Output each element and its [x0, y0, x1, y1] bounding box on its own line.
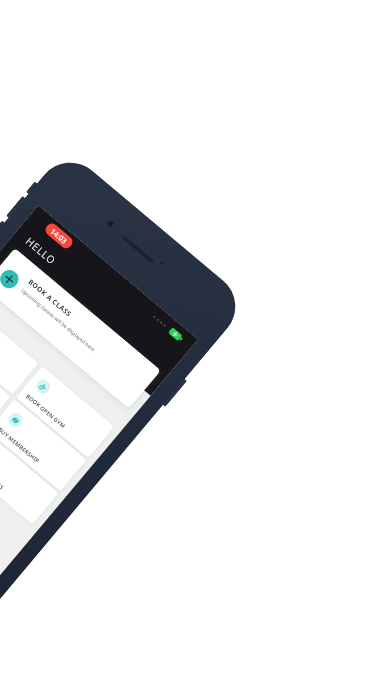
button[interactable]: BUY MEMBERSHIP — [0, 399, 87, 491]
button[interactable]: MY BOOKINGS — [0, 432, 59, 525]
staticText: MY BOOKINGS — [0, 459, 6, 491]
button[interactable]: BOOK OPEN GYM — [16, 366, 115, 458]
button[interactable]: BOOK A CLASS — [0, 248, 161, 409]
staticText: BUY MEMBERSHIP — [0, 425, 41, 465]
button[interactable]: Add booking — [0, 266, 22, 292]
staticText: BOOK OPEN GYM — [24, 392, 67, 430]
button[interactable]: BOOK A CLASS — [0, 303, 39, 395]
staticText: Upcoming classes will be displayed here. — [20, 287, 97, 353]
staticText: BOOK A CLASS — [26, 277, 74, 319]
staticText: 14:03 — [48, 226, 69, 246]
button[interactable]: PERSONAL TRAINING — [0, 336, 11, 428]
staticText: HELLO — [23, 234, 59, 268]
